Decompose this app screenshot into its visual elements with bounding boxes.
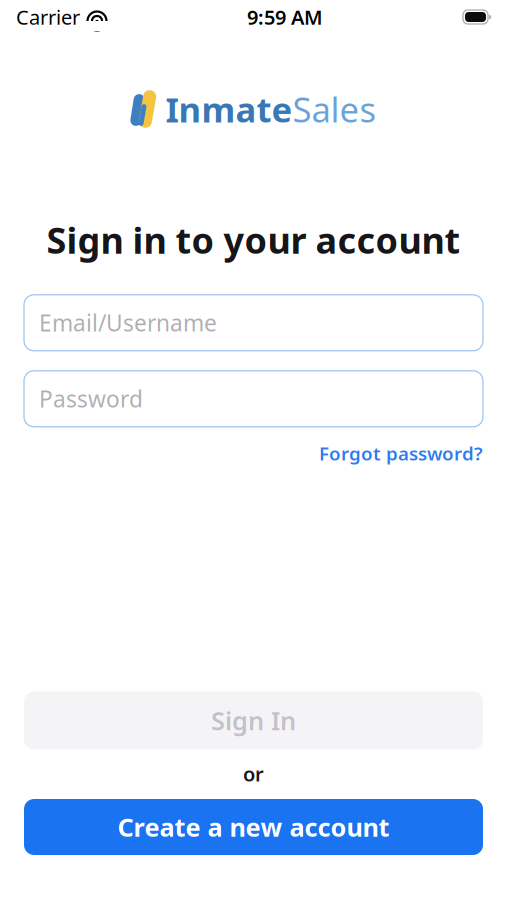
staticText: Password bbox=[39, 384, 143, 414]
staticText: Email/Username bbox=[39, 308, 217, 338]
button[interactable]: Forgot password? bbox=[319, 441, 483, 466]
staticText: or bbox=[243, 760, 264, 787]
staticText: Sales bbox=[292, 86, 376, 132]
staticText: 9:59 AM bbox=[247, 4, 323, 30]
button[interactable]: Sign In bbox=[0, 691, 507, 749]
staticText: Sign in to your account bbox=[46, 216, 460, 264]
staticText: Carrier bbox=[16, 4, 80, 30]
staticText: Inmate bbox=[165, 86, 292, 132]
staticText: Forgot password? bbox=[319, 441, 483, 466]
button[interactable]: Create a new account bbox=[0, 799, 507, 855]
staticText: Sign In bbox=[211, 704, 296, 737]
staticText: Create a new account bbox=[117, 810, 389, 844]
